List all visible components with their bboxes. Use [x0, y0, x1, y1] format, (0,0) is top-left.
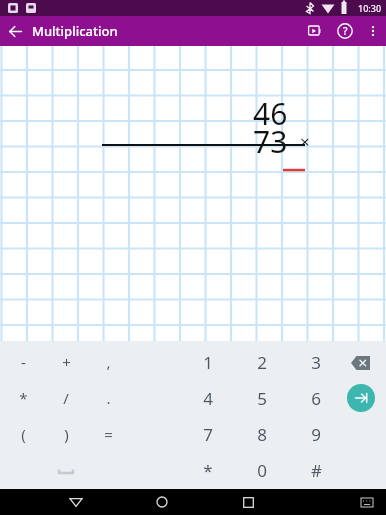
button[interactable]: Enter — [347, 384, 375, 412]
button[interactable]: 6 — [295, 380, 337, 416]
staticText: 8 — [257, 423, 267, 446]
button[interactable]: More options — [360, 18, 386, 44]
staticText: 4 — [203, 387, 213, 410]
button[interactable]: Switch keyboard — [352, 489, 382, 515]
staticText: 3 — [311, 351, 321, 374]
button[interactable]: Home — [145, 489, 179, 515]
staticText: 7 — [203, 423, 213, 446]
button[interactable]: - — [2, 344, 44, 380]
button[interactable]: Back — [0, 16, 30, 46]
staticText: ? — [343, 24, 348, 38]
button[interactable]: 2 — [241, 344, 283, 380]
button[interactable]: 4 — [187, 380, 229, 416]
button[interactable]: + — [45, 344, 87, 380]
button[interactable]: ) — [45, 416, 87, 452]
button[interactable]: 7 — [187, 416, 229, 452]
staticText: - — [21, 352, 26, 372]
staticText: = — [104, 424, 113, 444]
button[interactable]: 1 — [187, 344, 229, 380]
staticText: * — [19, 388, 28, 408]
button[interactable]: 9 — [295, 416, 337, 452]
button[interactable]: 5 — [241, 380, 283, 416]
button[interactable]: # — [295, 452, 337, 488]
button[interactable]: * — [2, 380, 44, 416]
staticText: # — [311, 459, 322, 482]
button[interactable]: = — [87, 416, 129, 452]
staticText: ( — [21, 424, 26, 444]
button[interactable]: , — [87, 344, 129, 380]
staticText: 6 — [311, 387, 321, 410]
staticText: 0 — [257, 459, 267, 482]
button[interactable]: 8 — [241, 416, 283, 452]
staticText: + — [62, 352, 71, 372]
button[interactable]: Backspace — [346, 349, 374, 377]
button[interactable]: Space — [52, 457, 80, 483]
button[interactable]: 0 — [241, 452, 283, 488]
staticText: 5 — [257, 387, 267, 410]
staticText: 46 — [253, 93, 288, 134]
staticText: 10:30 — [358, 2, 382, 14]
staticText: 9 — [311, 423, 321, 446]
staticText: , — [106, 352, 111, 372]
button[interactable]: Video — [300, 16, 330, 46]
staticText: × — [300, 130, 310, 153]
staticText: ) — [64, 424, 69, 444]
button[interactable]: ( — [2, 416, 44, 452]
button[interactable]: . — [87, 380, 129, 416]
staticText: / — [63, 388, 69, 408]
button[interactable]: Back — [59, 489, 93, 515]
button[interactable]: * — [187, 452, 229, 488]
staticText: 73 — [253, 121, 288, 162]
button[interactable]: Recents — [231, 489, 265, 515]
staticText: . — [106, 388, 111, 408]
staticText: 2 — [257, 351, 267, 374]
staticText: * — [203, 459, 213, 482]
button[interactable]: Help — [330, 16, 360, 46]
staticText: Multiplication — [32, 22, 118, 40]
staticText: 1 — [203, 351, 213, 374]
button[interactable]: / — [45, 380, 87, 416]
button[interactable]: 3 — [295, 344, 337, 380]
